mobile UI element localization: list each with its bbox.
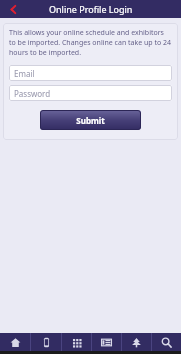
staticText: Password	[14, 88, 51, 99]
staticText: Online Profile Login	[49, 3, 133, 15]
button[interactable]: Home	[0, 333, 30, 351]
button[interactable]: Search	[152, 333, 181, 351]
staticText: This allows your online schedule and exh…	[9, 28, 172, 58]
button[interactable]: Password	[9, 85, 172, 101]
button[interactable]: List	[92, 333, 121, 351]
button[interactable]: My Device	[31, 333, 61, 351]
button[interactable]: Map	[122, 333, 151, 351]
staticText: Email	[14, 68, 35, 79]
button[interactable]: Apps	[62, 333, 91, 351]
button[interactable]: Email	[9, 65, 172, 81]
button[interactable]: Submit	[40, 110, 141, 130]
button[interactable]: Back	[0, 0, 26, 18]
staticText: Submit	[76, 115, 105, 126]
